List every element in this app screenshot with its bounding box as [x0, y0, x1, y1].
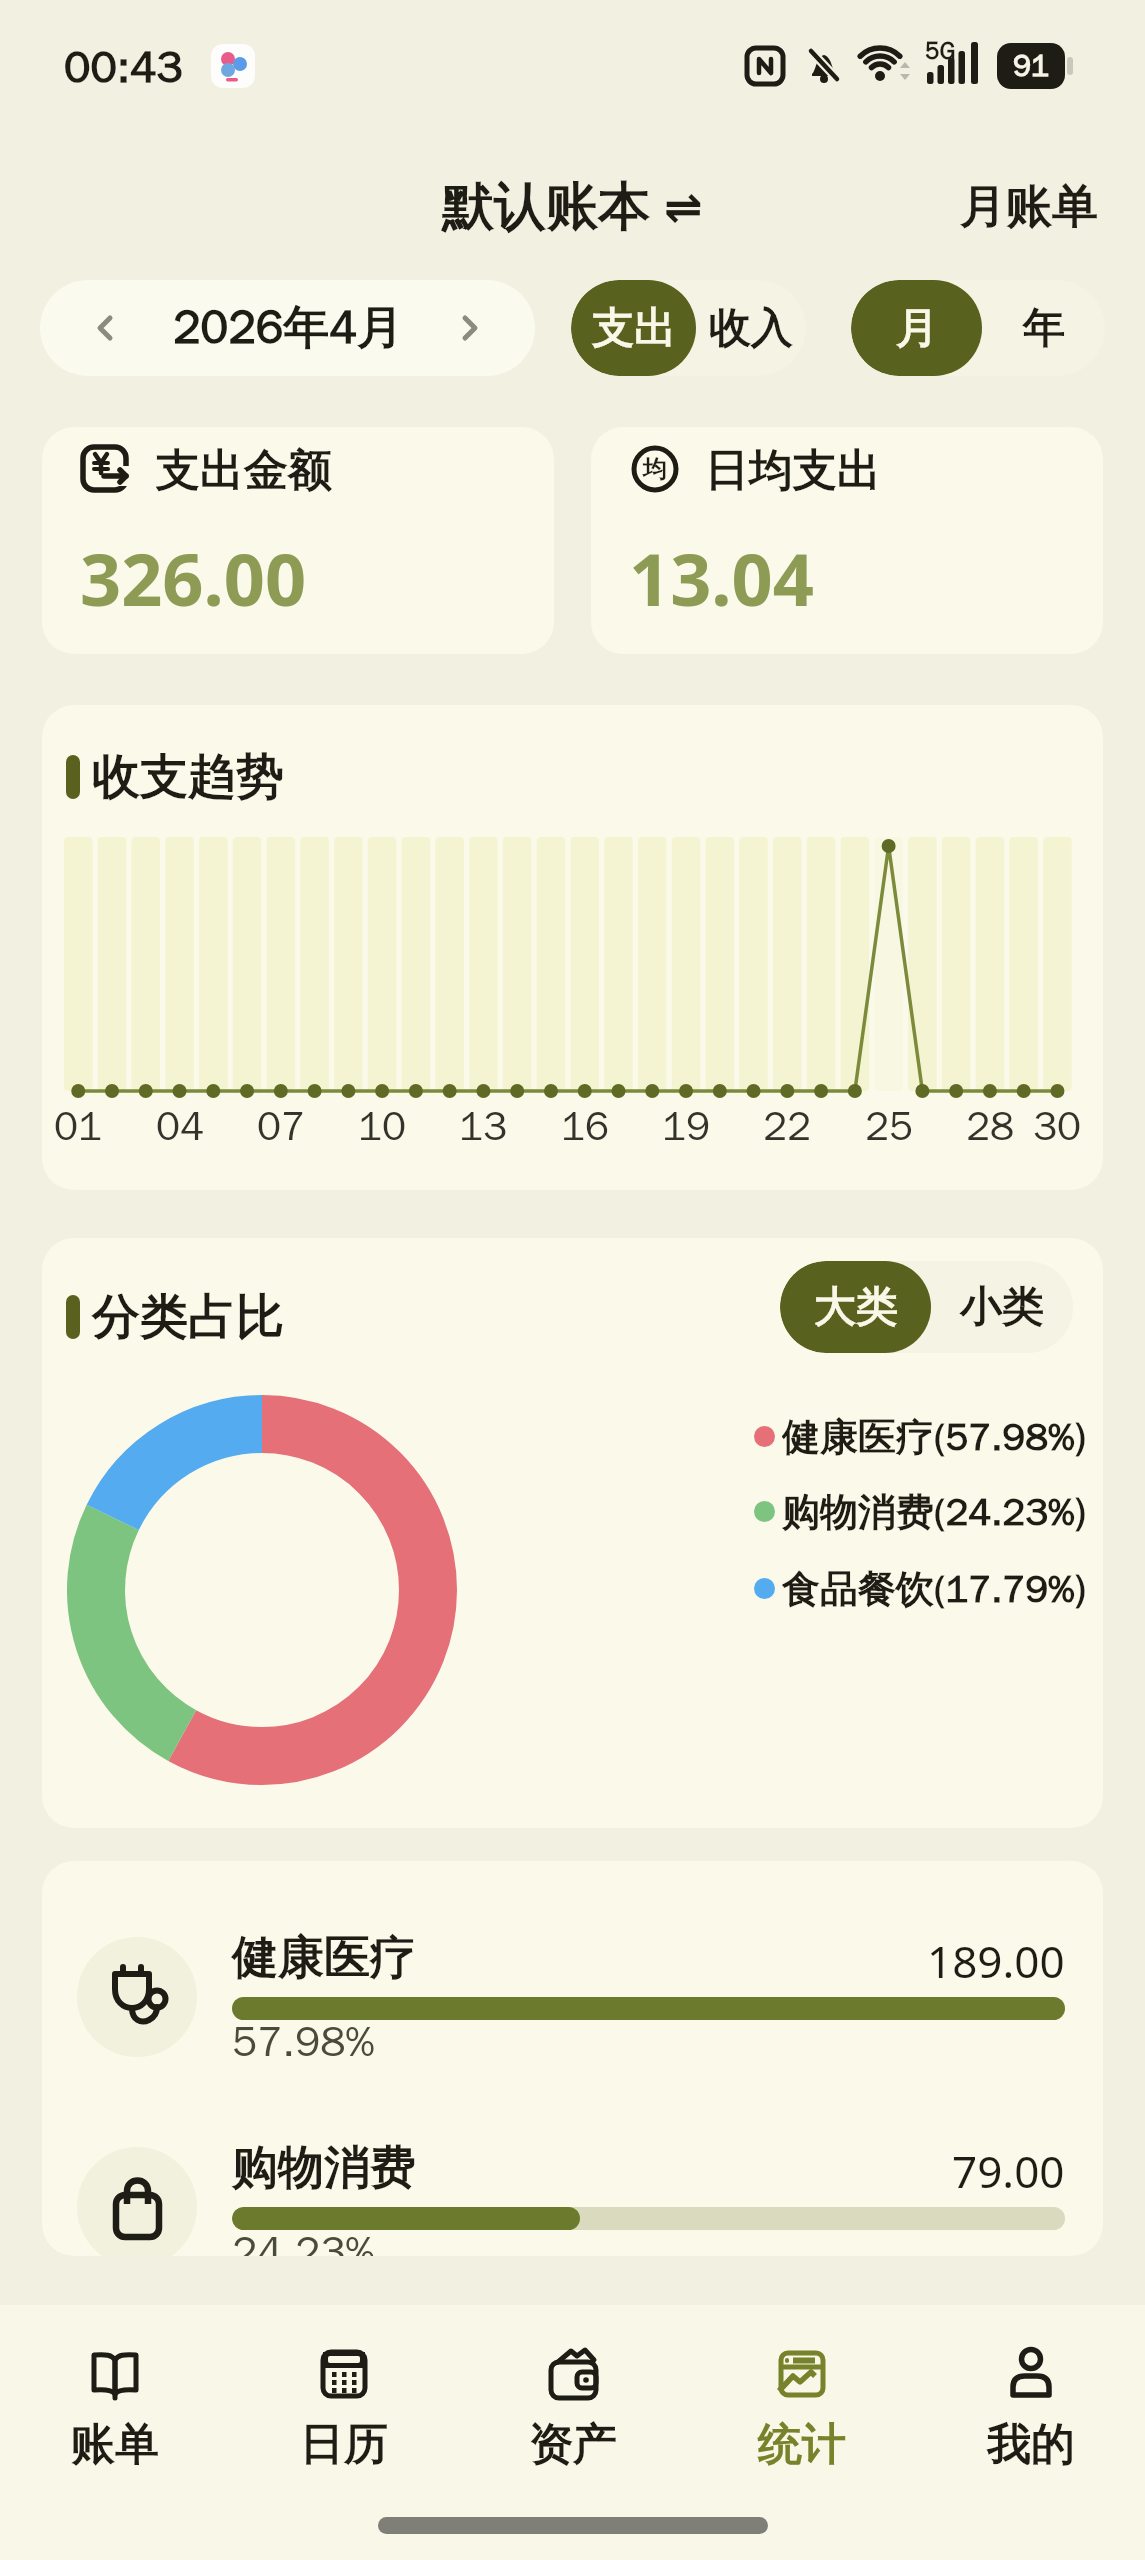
staticText: 支出金额 — [156, 443, 332, 495]
staticText: 资产 — [529, 2417, 617, 2472]
staticText: 分类占比 — [92, 1287, 284, 1347]
staticText: 食品餐饮(17.79%) — [782, 1565, 1086, 1611]
staticText: 10 — [358, 1101, 406, 1151]
staticText: 账单 — [71, 2417, 159, 2472]
button[interactable]: 支出金额 — [42, 427, 554, 654]
button[interactable]: 小类 — [931, 1261, 1073, 1353]
staticText: 04 — [156, 1101, 204, 1151]
staticText: 日历 — [300, 2417, 388, 2472]
staticText: 大类 — [814, 1281, 898, 1334]
staticText: 年 — [1023, 302, 1065, 355]
staticText: 28 — [966, 1101, 1014, 1151]
button[interactable]: 支出 — [571, 280, 696, 376]
button[interactable] — [421, 280, 517, 376]
staticText: 购物消费(24.23%) — [782, 1488, 1086, 1534]
staticText: 购物消费 — [232, 2139, 416, 2197]
staticText: 16 — [561, 1101, 609, 1151]
staticText: 13 — [459, 1101, 507, 1151]
staticText: 日均支出 — [705, 443, 881, 495]
button[interactable]: 月 — [851, 280, 982, 376]
button[interactable] — [58, 280, 154, 376]
staticText: 189.00 — [927, 1931, 1065, 1991]
button[interactable]: 均 — [591, 427, 1103, 654]
staticText: 收入 — [709, 302, 793, 355]
staticText: 13.04 — [629, 529, 814, 627]
staticText: 2026年4月 — [173, 299, 403, 357]
staticText: 00:43 — [64, 40, 183, 92]
staticText: 30 — [1033, 1101, 1081, 1151]
button[interactable]: 收入 — [696, 280, 806, 376]
button[interactable]: 年 — [982, 280, 1105, 376]
staticText: 默认账本 — [442, 174, 650, 240]
button[interactable]: 月账单 — [960, 178, 1098, 236]
staticText: 57.98% — [232, 2016, 375, 2069]
button[interactable]: 健康医疗 — [42, 1861, 1103, 2071]
staticText: 25 — [865, 1101, 913, 1151]
button[interactable]: 默认账本 — [442, 174, 703, 240]
staticText: 均 — [643, 454, 667, 484]
staticText: 07 — [257, 1101, 305, 1151]
staticText: 326.00 — [80, 529, 307, 627]
button[interactable]: 统计 — [687, 2343, 916, 2472]
button[interactable]: 资产 — [458, 2343, 687, 2472]
staticText: 月账单 — [960, 178, 1098, 236]
staticText: 收支趋势 — [92, 747, 284, 807]
staticText: 91 — [1013, 47, 1049, 85]
staticText: 79.00 — [952, 2141, 1065, 2201]
staticText: 支出 — [592, 302, 676, 355]
staticText: 5G — [925, 36, 956, 66]
staticText: 我的 — [987, 2417, 1075, 2472]
staticText: 健康医疗(57.98%) — [782, 1413, 1086, 1459]
button[interactable]: 账单 — [0, 2343, 229, 2472]
staticText: ⇌ — [664, 180, 703, 234]
staticText: 19 — [662, 1101, 710, 1151]
button[interactable]: 我的 — [916, 2343, 1145, 2472]
button[interactable]: 日历 — [229, 2343, 458, 2472]
button[interactable]: 大类 — [780, 1261, 931, 1353]
staticText: 22 — [763, 1101, 811, 1151]
button[interactable]: 购物消费 — [42, 2071, 1103, 2256]
staticText: 月 — [896, 302, 938, 355]
staticText: 统计 — [758, 2417, 846, 2472]
staticText: 健康医疗 — [232, 1929, 416, 1987]
staticText: 01 — [54, 1101, 102, 1151]
staticText: 24.23% — [232, 2226, 375, 2256]
staticText: 小类 — [960, 1281, 1044, 1334]
